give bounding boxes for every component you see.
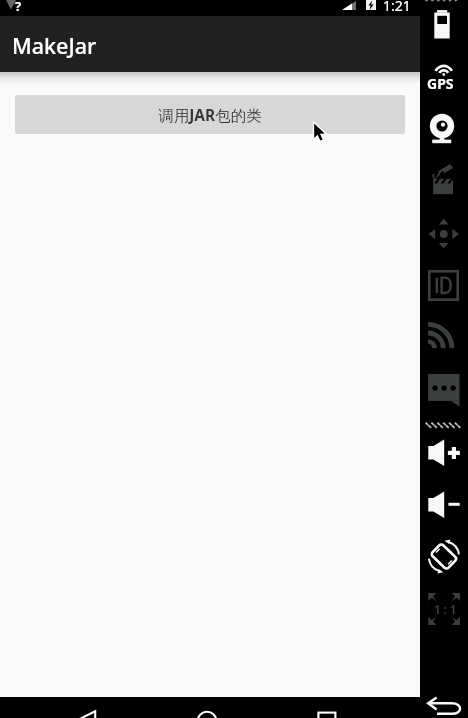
button[interactable]: Recents xyxy=(302,697,352,718)
button[interactable]: Zoom 1 to 1 xyxy=(426,590,462,628)
staticText: ? xyxy=(15,0,22,13)
button[interactable]: Back xyxy=(70,697,120,718)
staticText: 1 : 1 xyxy=(434,602,457,618)
staticText: 1:21 xyxy=(383,0,411,12)
button[interactable]: Cellular xyxy=(426,318,462,352)
button[interactable]: Rotate xyxy=(426,538,462,576)
button[interactable]: Volume down xyxy=(426,488,462,522)
staticText: GPS xyxy=(427,74,454,93)
button[interactable]: Record screen xyxy=(428,160,460,198)
staticText: MakeJar xyxy=(12,31,97,60)
button[interactable]: Home xyxy=(182,697,232,718)
button[interactable]: Back xyxy=(426,694,466,718)
staticText: 调用JAR包的类 xyxy=(158,104,262,125)
button[interactable]: Battery level xyxy=(428,6,460,42)
button[interactable]: GPS location xyxy=(426,60,462,90)
button[interactable]: 调用JAR包的类 xyxy=(15,95,405,134)
button[interactable]: Directional pad xyxy=(426,214,462,252)
button[interactable]: Phone ID xyxy=(426,268,462,304)
button[interactable]: Messages xyxy=(426,372,462,410)
button[interactable]: Webcam xyxy=(428,110,460,146)
button[interactable]: Volume up xyxy=(426,436,462,470)
